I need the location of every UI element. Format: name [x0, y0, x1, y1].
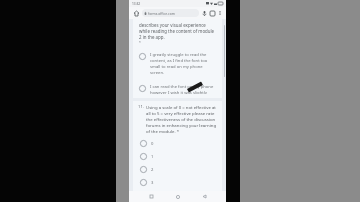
button[interactable]: I can read the font on my phone however … [133, 80, 222, 98]
staticText: I can read the font on my phone however … [150, 84, 216, 94]
staticText: Using a scale of 0 = not effective at al… [146, 104, 217, 134]
button[interactable]: Home [132, 9, 140, 17]
button[interactable]: More options [217, 10, 223, 16]
staticText: 2 [151, 167, 154, 173]
button[interactable]: Home [173, 192, 182, 201]
button[interactable]: 2 [133, 163, 222, 176]
staticText: forms.office.com [148, 11, 175, 16]
staticText: 3 [151, 180, 154, 186]
button[interactable]: 0 [133, 137, 222, 150]
staticText: 11. [138, 104, 144, 110]
button[interactable]: I greatly struggle to read the content, … [133, 48, 222, 80]
staticText: I greatly struggle to read the content, … [150, 52, 216, 76]
button[interactable]: 1 [133, 150, 222, 163]
staticText: 0 [151, 141, 154, 147]
staticText: 1 [151, 154, 154, 160]
staticText: 13:32 [132, 2, 141, 6]
staticText: * [139, 40, 141, 45]
button[interactable]: Tabs [209, 10, 216, 17]
button[interactable]: Back [200, 192, 209, 201]
button[interactable]: Recents [147, 192, 156, 201]
staticText: describes your visual experience while r… [139, 22, 216, 40]
button[interactable]: Voice search [201, 10, 208, 17]
button[interactable]: 3 [133, 176, 222, 189]
button[interactable]: forms.office.com [142, 9, 199, 17]
